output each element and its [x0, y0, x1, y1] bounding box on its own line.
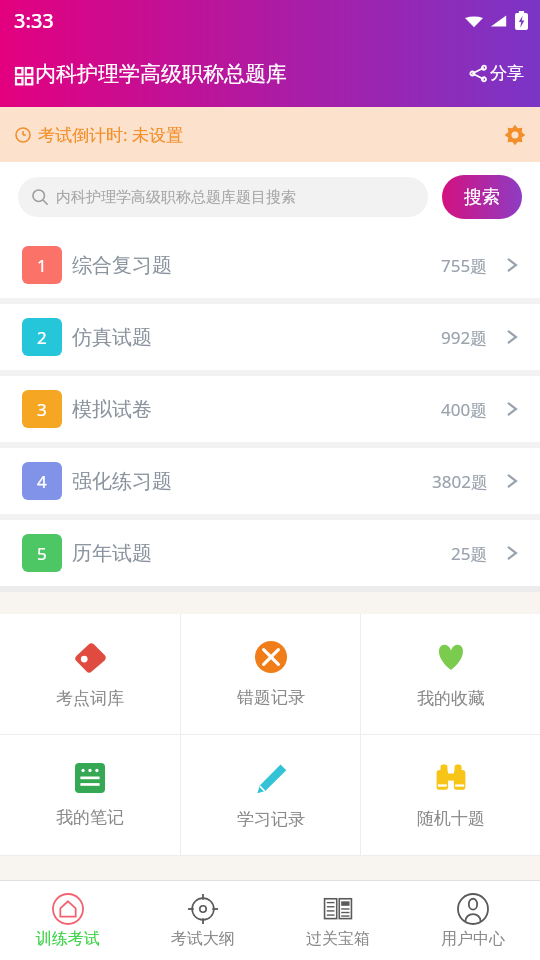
staticText: 内科护理学高级职称总题库	[35, 61, 287, 87]
button[interactable]: 学习记录	[181, 735, 360, 855]
staticText: 3:33	[14, 7, 54, 34]
staticText: 4	[37, 470, 47, 493]
staticText: 用户中心	[441, 929, 505, 949]
button[interactable]: 错题记录	[181, 614, 360, 734]
staticText: 学习记录	[237, 809, 305, 830]
staticText: 随机十题	[417, 808, 485, 829]
staticText: 755题	[441, 254, 488, 277]
button[interactable]: 过关宝箱	[270, 881, 405, 960]
button[interactable]: 内科护理学高级职称总题库题目搜索	[18, 177, 428, 217]
staticText: 992题	[441, 326, 488, 349]
staticText: 25题	[451, 542, 488, 565]
staticText: 内科护理学高级职称总题库题目搜索	[56, 188, 296, 207]
button[interactable]: 训练考试	[0, 881, 135, 960]
staticText: 400题	[441, 398, 488, 421]
staticText: 3802题	[432, 470, 488, 493]
button[interactable]: 考点词库	[0, 614, 180, 734]
button[interactable]: 我的笔记	[0, 735, 180, 855]
staticText: 训练考试	[36, 929, 100, 949]
button[interactable]: 分享	[454, 53, 540, 94]
staticText: 考点词库	[56, 688, 124, 709]
button[interactable]: 1	[0, 232, 540, 298]
staticText: 考试倒计时: 未设置	[38, 123, 183, 146]
button[interactable]: 2	[0, 304, 540, 370]
staticText: 分享	[490, 63, 524, 84]
staticText: 2	[37, 326, 47, 349]
staticText: 3	[37, 398, 47, 421]
button[interactable]: 3	[0, 376, 540, 442]
button[interactable]: 设置	[490, 114, 540, 156]
staticText: 我的收藏	[417, 688, 485, 709]
staticText: 历年试题	[72, 541, 152, 566]
staticText: 考试大纲	[171, 929, 235, 949]
staticText: 错题记录	[237, 687, 305, 708]
button[interactable]: 我的收藏	[361, 614, 540, 734]
staticText: 5	[37, 542, 47, 565]
staticText: 过关宝箱	[306, 929, 370, 949]
staticText: 我的笔记	[56, 807, 124, 828]
button[interactable]: 用户中心	[405, 881, 540, 960]
staticText: 综合复习题	[72, 253, 172, 278]
button[interactable]: 5	[0, 520, 540, 586]
staticText: 模拟试卷	[72, 397, 152, 422]
staticText: 搜索	[464, 186, 500, 209]
button[interactable]: 搜索	[442, 175, 522, 219]
button[interactable]: 随机十题	[361, 735, 540, 855]
staticText: 强化练习题	[72, 469, 172, 494]
staticText: 1	[37, 254, 47, 277]
staticText: 仿真试题	[72, 325, 152, 350]
button[interactable]: 考试大纲	[135, 881, 270, 960]
button[interactable]: 4	[0, 448, 540, 514]
